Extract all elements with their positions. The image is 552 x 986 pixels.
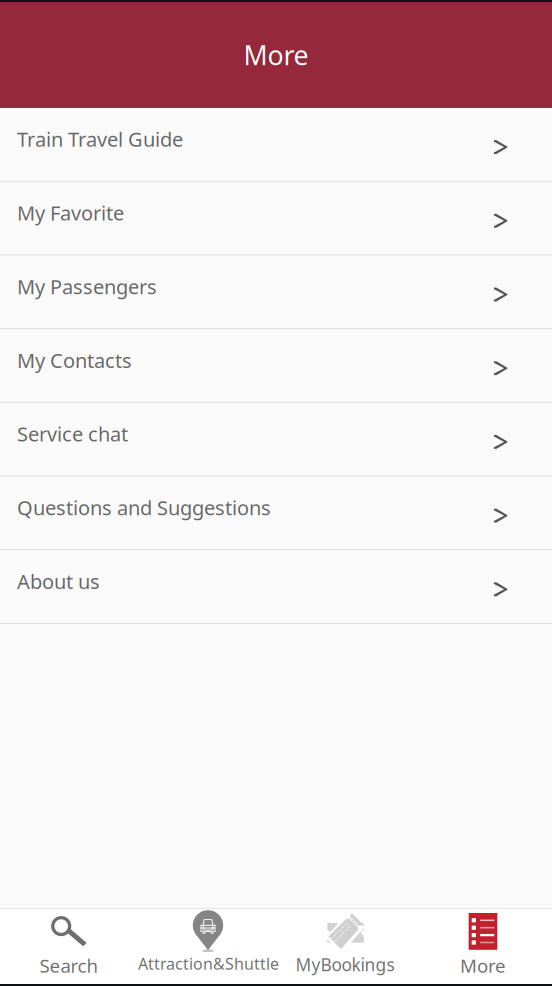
- button[interactable]: About us: [0, 550, 552, 624]
- button[interactable]: My Contacts: [0, 329, 552, 403]
- staticText: Search: [39, 953, 98, 978]
- staticText: My Favorite: [17, 199, 124, 226]
- button[interactable]: More: [414, 909, 552, 984]
- button[interactable]: My Favorite: [0, 182, 552, 255]
- button[interactable]: My Passengers: [0, 255, 552, 329]
- staticText: About us: [17, 568, 100, 595]
- staticText: Questions and Suggestions: [17, 494, 271, 521]
- button[interactable]: Questions and Suggestions: [0, 476, 552, 550]
- button[interactable]: Train Travel Guide: [0, 108, 552, 182]
- button[interactable]: Attraction&Shuttle: [138, 909, 276, 984]
- staticText: Train Travel Guide: [17, 126, 183, 152]
- button[interactable]: MyBookings: [276, 909, 414, 984]
- staticText: More: [460, 953, 506, 978]
- staticText: Attraction&Shuttle: [138, 953, 279, 974]
- button[interactable]: Search: [0, 909, 138, 984]
- staticText: My Contacts: [17, 347, 132, 373]
- staticText: Service chat: [17, 421, 128, 447]
- staticText: MyBookings: [295, 953, 394, 976]
- staticText: More: [243, 37, 308, 73]
- button[interactable]: Service chat: [0, 403, 552, 476]
- staticText: My Passengers: [17, 273, 157, 300]
